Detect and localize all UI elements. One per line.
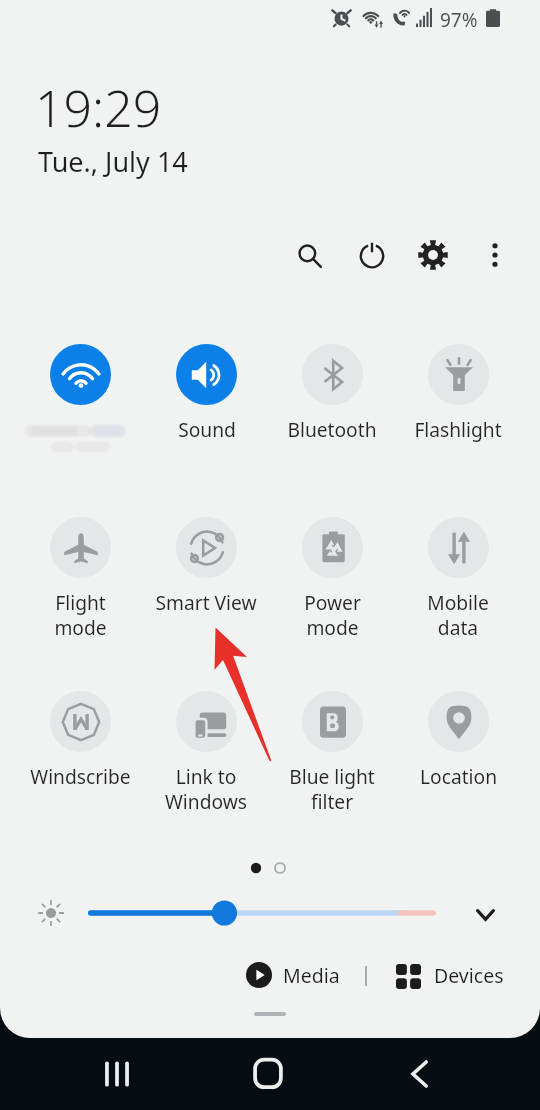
button[interactable]: Home bbox=[232, 1038, 304, 1110]
staticText: Windscribe bbox=[30, 763, 131, 789]
staticText: Sound bbox=[178, 416, 236, 442]
staticText: Media bbox=[283, 962, 340, 989]
button[interactable]: Search bbox=[280, 226, 338, 284]
button[interactable]: Mobile data bbox=[397, 517, 519, 647]
staticText: Devices bbox=[434, 962, 504, 989]
button[interactable]: Expand brightness bbox=[463, 892, 508, 937]
button[interactable]: Smart View bbox=[145, 517, 267, 647]
button[interactable]: Windscribe bbox=[19, 691, 141, 821]
button[interactable]: Power off bbox=[343, 226, 401, 284]
button[interactable]: Power mode bbox=[271, 517, 393, 647]
button[interactable]: Blue light filter bbox=[271, 691, 393, 821]
button[interactable] bbox=[19, 344, 141, 474]
button[interactable]: Flashlight bbox=[397, 344, 519, 474]
staticText: Smart View bbox=[155, 589, 257, 615]
staticText: Flight mode bbox=[54, 589, 107, 640]
button[interactable]: Media bbox=[240, 958, 348, 992]
button[interactable]: Location bbox=[397, 691, 519, 821]
button[interactable]: More options bbox=[466, 226, 524, 284]
button[interactable]: Back bbox=[383, 1038, 455, 1110]
staticText: Mobile data bbox=[427, 589, 489, 640]
button[interactable]: Bluetooth bbox=[271, 344, 393, 474]
button[interactable]: Flight mode bbox=[19, 517, 141, 647]
staticText: Link to Windows bbox=[165, 763, 247, 814]
staticText: Location bbox=[420, 763, 497, 789]
staticText: Power mode bbox=[304, 589, 361, 640]
staticText: Blue light filter bbox=[289, 763, 375, 814]
staticText: Flashlight bbox=[414, 416, 502, 442]
button[interactable]: Link to Windows bbox=[145, 691, 267, 821]
button[interactable]: Sound bbox=[145, 344, 267, 474]
staticText: Bluetooth bbox=[287, 416, 377, 442]
staticText: 97% bbox=[440, 7, 478, 33]
button[interactable]: Devices bbox=[390, 958, 512, 992]
staticText: 19:29 bbox=[35, 74, 162, 142]
button[interactable]: Recents bbox=[81, 1038, 153, 1110]
staticText: Tue., July 14 bbox=[38, 143, 188, 180]
button[interactable]: Settings bbox=[404, 226, 462, 284]
